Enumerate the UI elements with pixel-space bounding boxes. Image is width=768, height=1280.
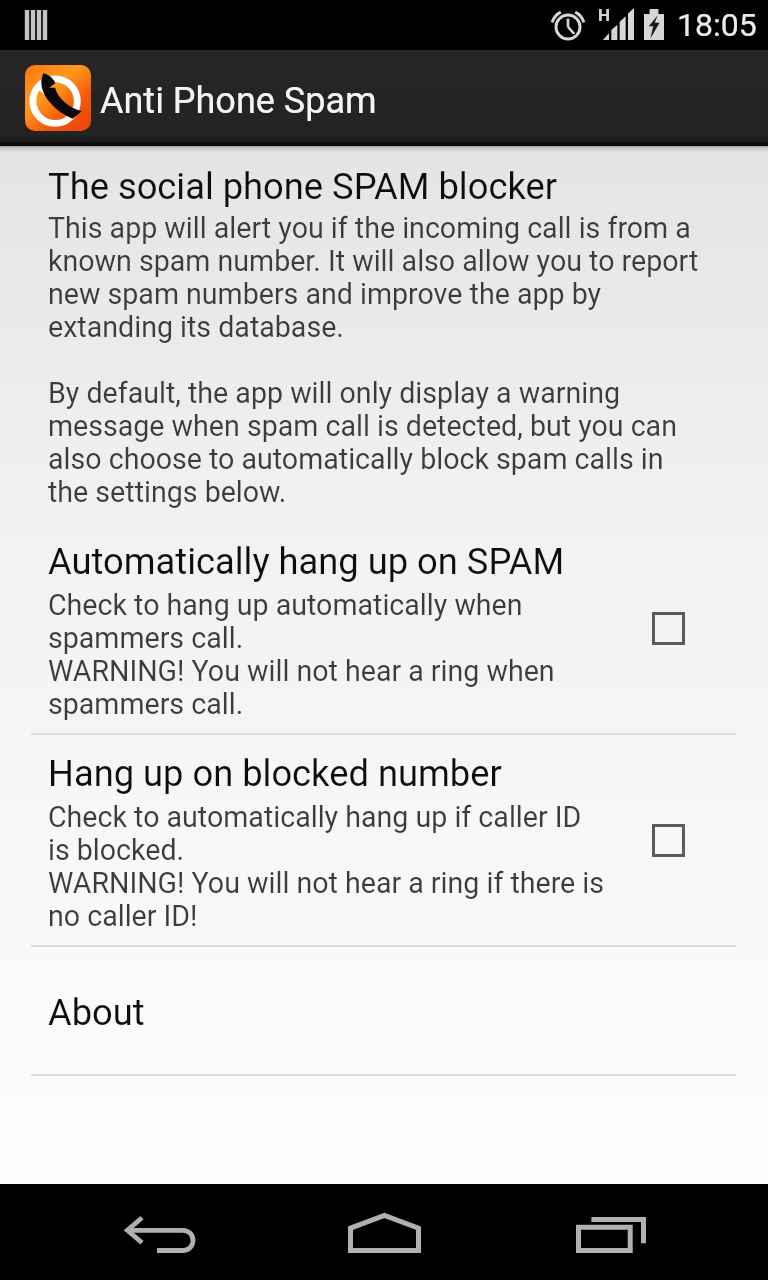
staticText: Hang up on blocked number [48,754,502,794]
staticText: By default, the app will only display a … [48,377,706,509]
staticText: The social phone SPAM blocker [48,167,557,207]
staticText: Automatically hang up on SPAM [48,542,565,582]
staticText: Check to hang up automatically when spam… [48,589,607,721]
button[interactable]: Home [288,1184,480,1280]
button[interactable]: Toggle: Hang up on blocked number [630,802,706,878]
button[interactable]: Back [64,1184,256,1280]
staticText: About [48,993,145,1033]
staticText: Check to automatically hang up if caller… [48,801,607,933]
button[interactable]: Anti Phone Spam, up [0,50,768,146]
button[interactable]: Recent apps [512,1184,704,1280]
button[interactable]: About [0,945,768,1074]
button[interactable]: Automatically hang up on SPAM [0,542,768,733]
staticText: This app will alert you if the incoming … [48,212,706,344]
staticText: H [598,5,611,25]
button[interactable]: Toggle: Automatically hang up on SPAM [630,590,706,666]
staticText: 18:05 [677,6,757,44]
staticText: Anti Phone Spam [100,80,377,122]
button[interactable]: Hang up on blocked number [0,754,768,945]
